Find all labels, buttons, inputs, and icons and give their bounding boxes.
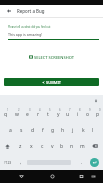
staticText: 3 (29, 108, 31, 112)
button[interactable]: d (27, 122, 38, 138)
staticText: 1 (7, 108, 9, 112)
button[interactable]: Home (46, 170, 59, 183)
staticText: 5 (49, 108, 51, 112)
button[interactable]: 6 (53, 106, 63, 122)
button[interactable]: Back (15, 170, 28, 183)
staticText: l (92, 127, 94, 134)
button[interactable]: v (47, 138, 57, 154)
staticText: 8 (79, 108, 81, 112)
staticText: n (70, 143, 74, 150)
button[interactable]: h (58, 122, 68, 138)
button[interactable]: g (48, 122, 58, 138)
staticText: 7 (69, 108, 71, 112)
button[interactable]: m (77, 138, 87, 154)
staticText: v (51, 143, 54, 150)
button[interactable]: Back (0, 5, 17, 17)
button[interactable]: SUBMIT (4, 78, 99, 86)
staticText: 9 (89, 108, 91, 112)
button[interactable]: n (67, 138, 77, 154)
button[interactable]: a (5, 122, 16, 138)
button[interactable]: Recent apps (75, 170, 88, 183)
button[interactable]: 7 (63, 106, 73, 122)
staticText: i (77, 111, 79, 118)
button[interactable]: f (38, 122, 48, 138)
staticText: , (20, 159, 22, 165)
button[interactable]: 1 (0, 106, 11, 122)
staticText: b (60, 143, 64, 150)
button[interactable]: Hide keyboard (89, 95, 103, 106)
staticText: t (47, 111, 49, 118)
staticText: c (41, 143, 44, 150)
staticText: q (4, 111, 8, 118)
button[interactable]: 5 (43, 106, 53, 122)
button[interactable]: z (15, 138, 26, 154)
staticText: h (61, 127, 65, 134)
staticText: e (26, 111, 29, 118)
button[interactable]: b (57, 138, 67, 154)
button[interactable]: Shift (0, 138, 15, 154)
staticText: d (31, 127, 35, 134)
button[interactable]: 9 (83, 106, 93, 122)
button[interactable]: 3 (22, 106, 33, 122)
button[interactable]: 0 (93, 106, 103, 122)
staticText: a (9, 127, 12, 134)
staticText: k (82, 127, 85, 134)
staticText: w (15, 111, 19, 118)
button[interactable]: 2 (11, 106, 22, 122)
staticText: 0 (99, 108, 101, 112)
staticText: m (80, 143, 85, 150)
staticText: x (30, 143, 33, 150)
button[interactable]: Switch keyboard (87, 170, 100, 183)
staticText: f (42, 127, 44, 134)
staticText: 2 (18, 108, 20, 112)
button[interactable]: SELECT SCREENSHOT (0, 52, 103, 62)
staticText: u (66, 111, 70, 118)
staticText: SUBMIT (46, 80, 62, 85)
staticText: s (20, 127, 23, 134)
staticText: o (86, 111, 90, 118)
button[interactable]: s (16, 122, 27, 138)
button[interactable]: c (37, 138, 47, 154)
button[interactable]: x (26, 138, 37, 154)
staticText: z (19, 143, 22, 150)
staticText: 6 (59, 108, 61, 112)
staticText: j (72, 127, 74, 134)
staticText: SELECT SCREENSHOT (34, 55, 74, 60)
staticText: This app is amazing! (8, 32, 43, 37)
staticText: 4 (39, 108, 41, 112)
button[interactable]: . (71, 154, 93, 170)
staticText: Report a Bug (17, 8, 45, 14)
button[interactable]: ?123 (0, 154, 15, 170)
staticText: r (37, 111, 40, 118)
button[interactable]: , (15, 154, 27, 170)
staticText: g (51, 127, 55, 134)
staticText: ?123 (4, 160, 12, 165)
button[interactable]: Backspace (87, 138, 103, 154)
staticText: . (81, 159, 83, 165)
button[interactable]: Enter (89, 154, 99, 170)
button[interactable]: k (78, 122, 88, 138)
button[interactable]: 4 (33, 106, 43, 122)
button[interactable]: j (68, 122, 78, 138)
button[interactable]: l (88, 122, 98, 138)
staticText: y (57, 111, 60, 118)
button[interactable]: 8 (73, 106, 83, 122)
staticText: Please tell us what did you find out (8, 25, 51, 29)
staticText: p (96, 111, 100, 118)
